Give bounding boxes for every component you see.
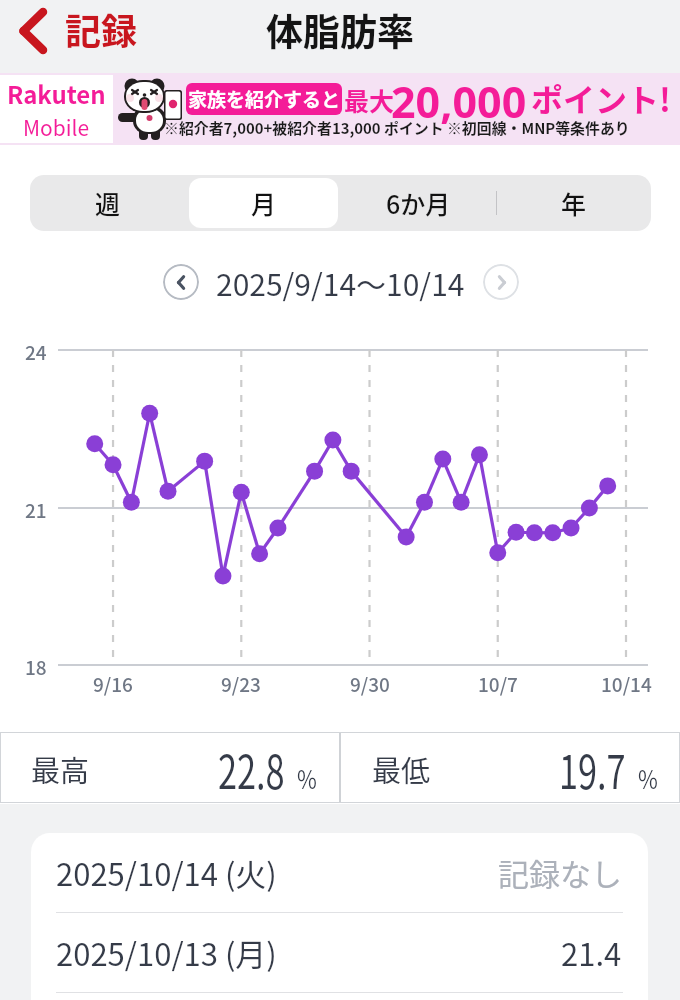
button[interactable]: 記録 [0, 0, 152, 73]
staticText: 体脂肪率 [266, 3, 414, 57]
staticText: % [638, 760, 659, 796]
staticText: 2025/10/13 (月) [56, 930, 277, 975]
staticText: 9/16 [93, 670, 133, 698]
staticText: 2025/10/14 (火) [56, 850, 277, 895]
staticText: 18 [25, 653, 47, 681]
staticText: ※紹介者7,000+被紹介者13,000 ポイント ※初回線・MNP等条件あり [164, 117, 630, 139]
button[interactable]: 年 [496, 175, 651, 231]
staticText: ポイント! [531, 75, 671, 121]
staticText: 9/30 [350, 670, 390, 698]
staticText: 20,000 [391, 72, 527, 131]
staticText: Mobile [23, 112, 90, 142]
button[interactable]: 前の期間 [163, 264, 199, 300]
staticText: 最高 [31, 748, 90, 790]
button[interactable]: 週 [30, 175, 186, 231]
staticText: 9/23 [221, 670, 261, 698]
staticText: 年 [561, 185, 587, 221]
button[interactable]: 月 [186, 175, 341, 231]
staticText: 週 [95, 185, 121, 221]
staticText: 21 [25, 496, 47, 524]
staticText: 6か月 [386, 185, 451, 221]
staticText: 記録なし [498, 850, 622, 895]
staticText: 家族を紹介すると [188, 85, 341, 113]
button[interactable]: Rakuten [0, 73, 680, 145]
staticText: 22.8 [218, 734, 285, 802]
staticText: 19.7 [559, 734, 626, 802]
button[interactable]: 2025/10/14 (火) [31, 833, 648, 912]
staticText: 24 [25, 338, 47, 366]
staticText: 最大 [344, 82, 395, 118]
button[interactable]: 次の期間 [483, 264, 519, 300]
staticText: 21.4 [561, 930, 622, 975]
button[interactable]: 2025/10/13 (月) [31, 913, 648, 992]
staticText: 月 [251, 185, 277, 221]
button[interactable]: 6か月 [341, 175, 496, 231]
staticText: 10/14 [601, 670, 652, 698]
staticText: 記録 [65, 3, 138, 55]
staticText: Rakuten [7, 76, 106, 111]
staticText: 最低 [372, 748, 431, 790]
staticText: 2025/9/14〜10/14 [216, 261, 465, 304]
staticText: 10/7 [478, 670, 518, 698]
staticText: % [297, 760, 318, 796]
